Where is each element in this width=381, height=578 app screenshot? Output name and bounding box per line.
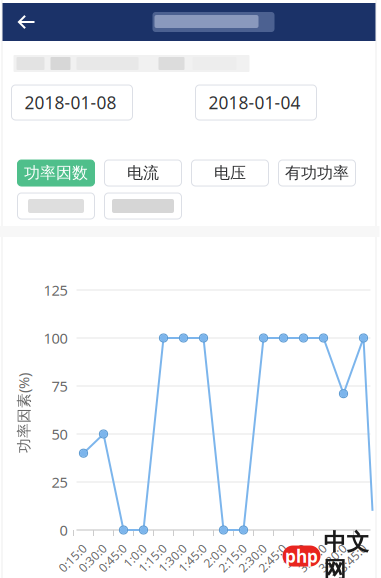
button[interactable]: Option (104, 193, 181, 219)
staticText: 3:15:0 (296, 552, 330, 568)
staticText: 0:15:0 (56, 552, 90, 568)
staticText: 2:15:0 (216, 552, 250, 568)
staticText: 125 (43, 280, 67, 300)
staticText: 3:0:0 (283, 552, 310, 568)
staticText: 1:0:0 (123, 552, 150, 568)
staticText: 功率因素(%) (0, 403, 63, 423)
staticText: 2:0:0 (203, 552, 230, 568)
staticText: 3:30:0 (316, 552, 350, 568)
staticText: 1:30:0 (156, 552, 190, 568)
button[interactable]: 电压 (191, 160, 268, 186)
staticText: 0 (59, 520, 67, 540)
staticText: 电流 (127, 163, 159, 183)
staticText: 2018-01-04 (208, 91, 300, 114)
staticText: 电压 (214, 163, 246, 183)
staticText: 0:45:0 (96, 552, 130, 568)
staticText: 中文网 (323, 528, 369, 578)
staticText: php (285, 544, 318, 567)
button[interactable]: 电流 (104, 160, 181, 186)
staticText: 2:30:0 (236, 552, 270, 568)
button[interactable]: 2018-01-08 (11, 85, 132, 120)
staticText: 1:15:0 (136, 552, 170, 568)
staticText: 功率因数 (24, 163, 88, 183)
button[interactable]: Option (17, 193, 94, 219)
staticText: 2018-01-08 (24, 91, 116, 114)
button[interactable]: 功率因数 (17, 160, 94, 186)
staticText: 2:45:0 (256, 552, 290, 568)
staticText: 25 (51, 472, 67, 492)
staticText: 50 (51, 424, 67, 444)
button[interactable]: Back (11, 3, 41, 41)
button[interactable]: 有功功率 (278, 160, 355, 186)
staticText: 1:45:0 (176, 552, 210, 568)
staticText: 75 (51, 376, 67, 396)
button[interactable]: 2018-01-04 (195, 85, 316, 120)
staticText: 100 (43, 328, 67, 348)
staticText: 3:45:0 (336, 552, 370, 568)
staticText: 有功功率 (285, 163, 349, 183)
staticText: 0:30:0 (76, 552, 110, 568)
